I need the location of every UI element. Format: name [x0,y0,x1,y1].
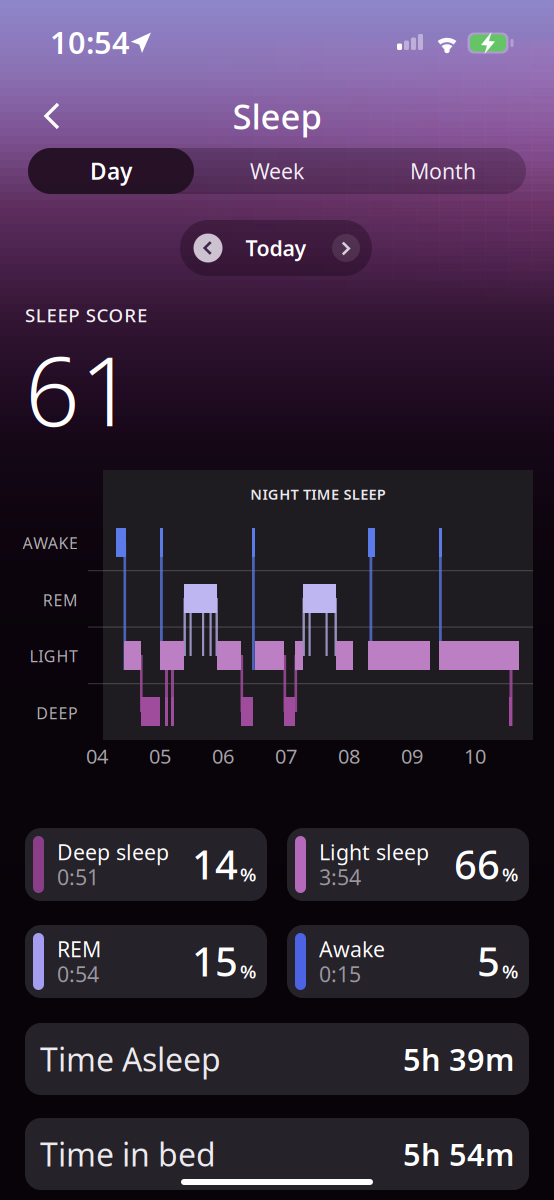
staticText: 5h 54m [403,1134,514,1174]
staticText: 10:54 [50,22,130,62]
staticText: 05 [149,743,171,769]
staticText: Deep sleep [57,838,169,866]
staticText: 04 [86,743,108,769]
staticText: 0:54 [57,960,99,988]
staticText: 61 [25,325,135,453]
staticText: 08 [338,743,360,769]
staticText: 5 [477,934,500,987]
staticText: Today [245,234,306,262]
staticText: REM [57,935,101,963]
staticText: 07 [275,743,297,769]
staticText: Sleep [232,93,321,139]
staticText: Awake [319,935,385,963]
button[interactable]: Back [30,96,74,136]
staticText: 09 [401,743,423,769]
staticText: REM [43,589,78,611]
staticText: 0:51 [57,863,99,891]
staticText: 15 [192,934,238,987]
staticText: Week [250,157,304,185]
staticText: Time in bed [40,1133,216,1175]
button[interactable]: Day [28,148,194,194]
button[interactable]: Month [360,148,526,194]
staticText: Month [410,157,476,185]
button[interactable]: Previous day [193,233,222,262]
staticText: % [502,862,518,887]
staticText: 3:54 [319,863,361,891]
staticText: NIGHT TIME SLEEP [250,484,386,504]
staticText: LIGHT [30,645,78,667]
staticText: % [240,862,256,887]
staticText: 06 [212,743,234,769]
staticText: 14 [192,837,238,890]
staticText: % [240,959,256,984]
staticText: DEEP [36,702,78,724]
staticText: SLEEP SCORE [25,303,147,327]
staticText: 0:15 [319,960,361,988]
staticText: Light sleep [319,838,429,866]
staticText: Day [90,156,132,186]
staticText: AWAKE [23,532,78,554]
staticText: Time Asleep [40,1038,221,1080]
staticText: 10 [464,743,486,769]
button[interactable]: Week [194,148,360,194]
staticText: 66 [454,837,500,890]
button[interactable]: Next day [332,234,360,262]
staticText: 5h 39m [403,1039,514,1079]
staticText: % [502,959,518,984]
